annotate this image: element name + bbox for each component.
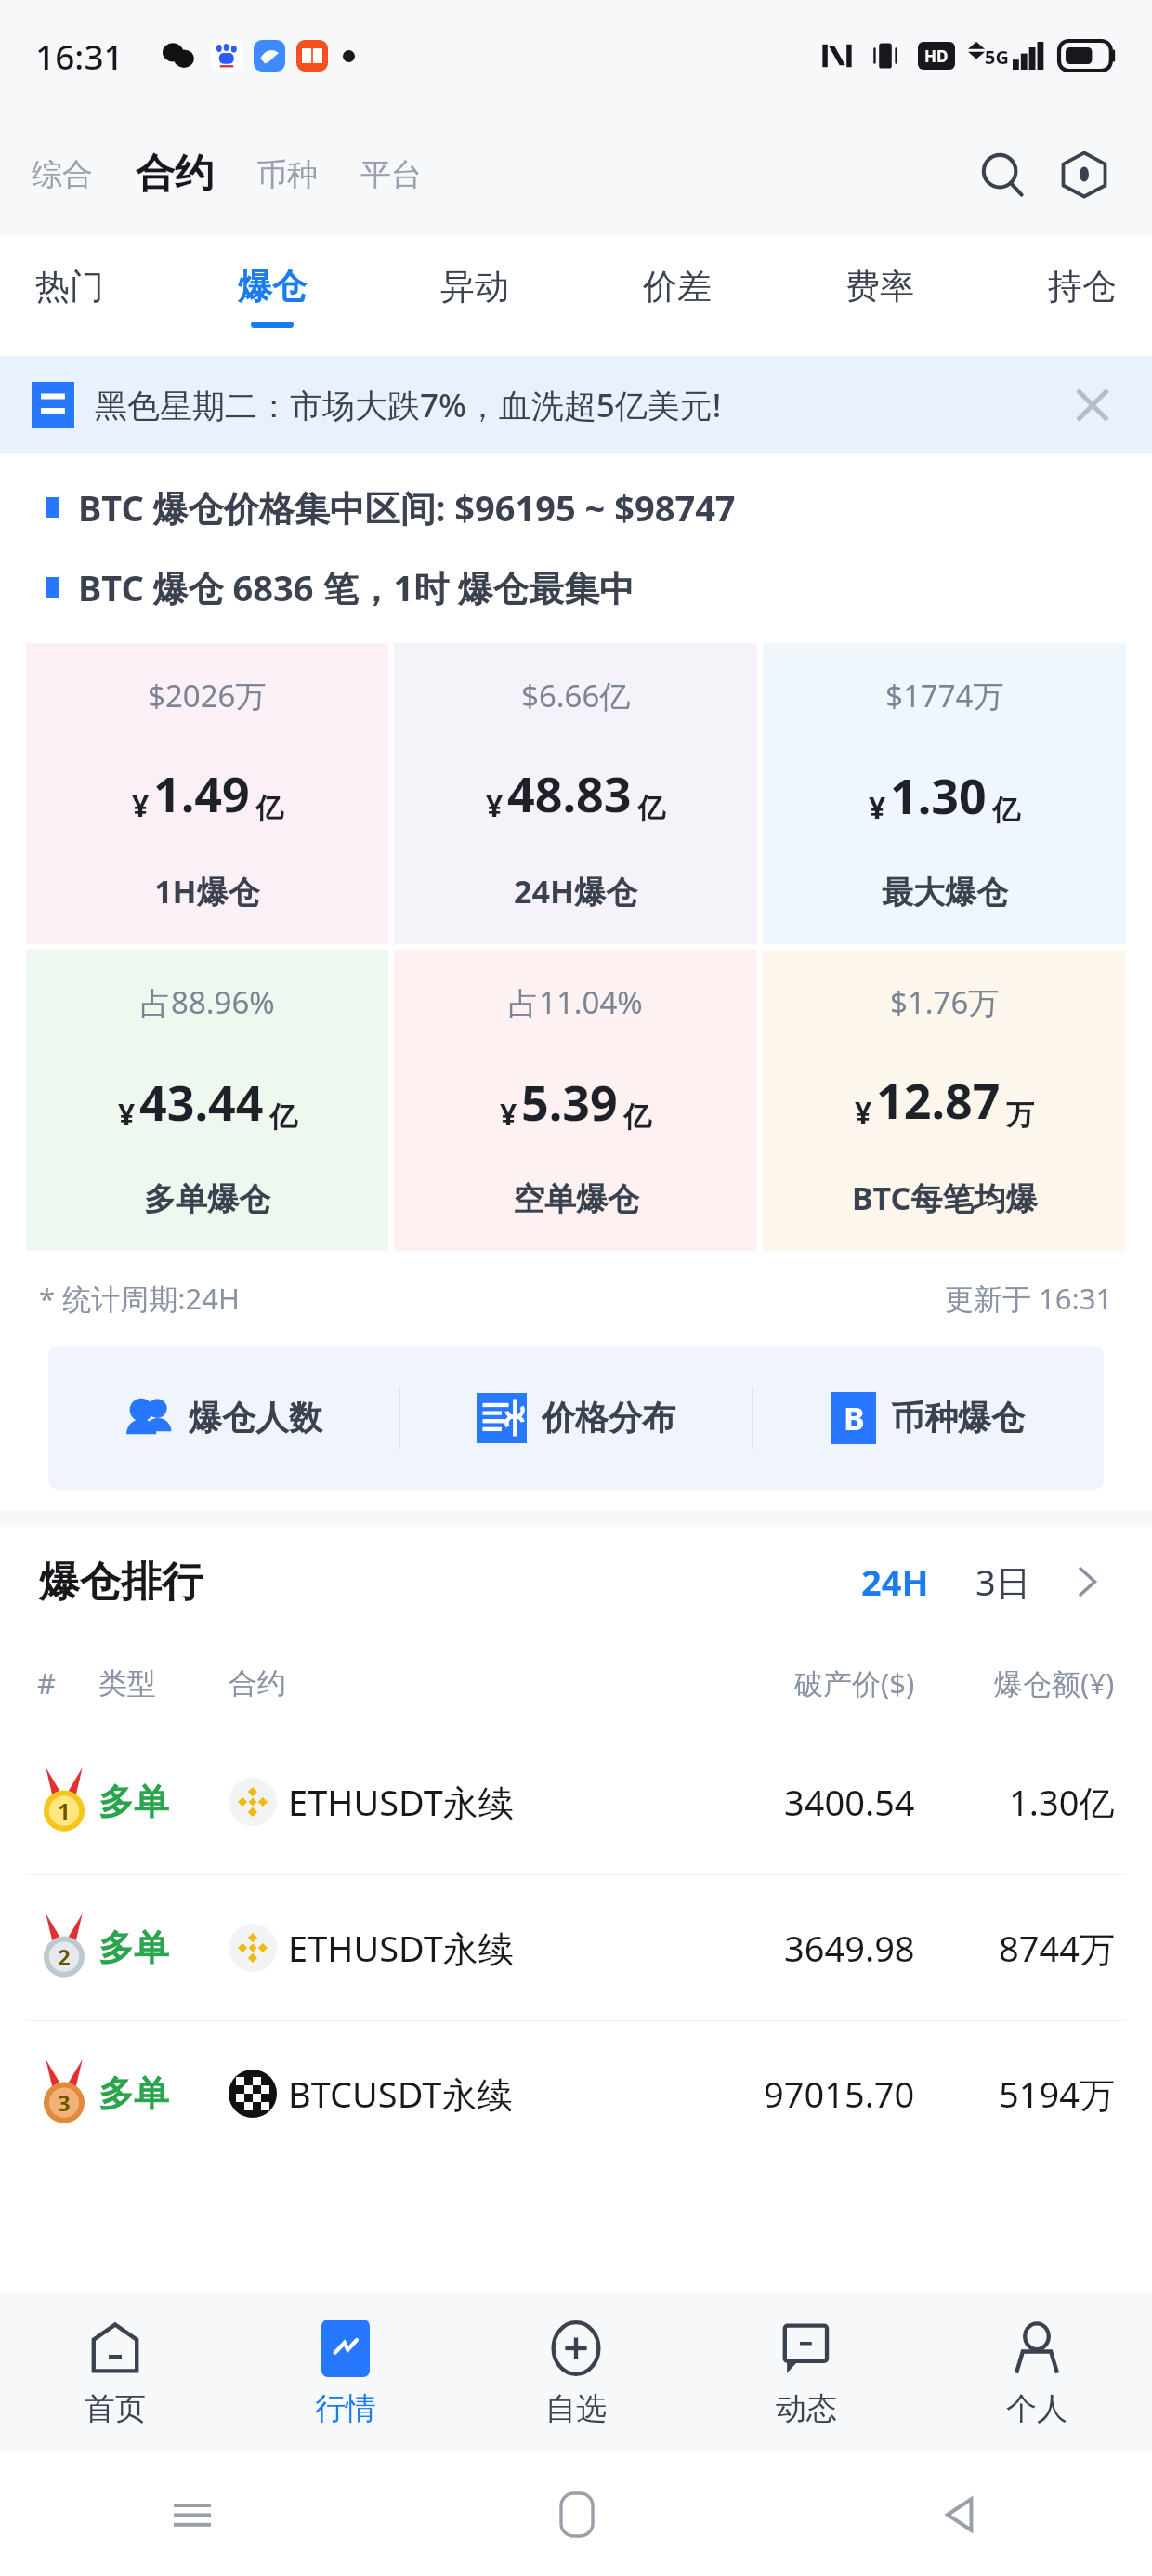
button[interactable]: $6.66亿 bbox=[394, 643, 757, 944]
button[interactable]: 合约 bbox=[136, 142, 214, 206]
staticText: 24H爆仓 bbox=[514, 870, 637, 913]
button[interactable]: Settings bbox=[1048, 138, 1120, 211]
staticText: 3400.54 bbox=[784, 1778, 915, 1826]
button[interactable]: 2 bbox=[0, 1875, 1152, 2020]
button[interactable]: 1 bbox=[0, 1729, 1152, 1874]
button[interactable]: $2026万 bbox=[26, 643, 388, 944]
staticText: 破产价($) bbox=[794, 1663, 915, 1702]
button[interactable]: 自选 bbox=[461, 2293, 691, 2453]
staticText: * 统计周期:24H bbox=[39, 1279, 240, 1318]
staticText: 多单 bbox=[98, 1780, 169, 1824]
staticText: ¥ bbox=[855, 1092, 872, 1133]
staticText: 97015.70 bbox=[764, 2070, 915, 2118]
staticText: B bbox=[844, 1397, 865, 1439]
button[interactable]: 综合 bbox=[32, 148, 93, 202]
button[interactable]: 占11.04% bbox=[394, 950, 757, 1251]
staticText: BTC 爆仓 6836 笔，1时 爆仓最集中 bbox=[78, 563, 635, 611]
button[interactable]: 爆仓人数 bbox=[48, 1346, 399, 1490]
staticText: 多单 bbox=[98, 1925, 169, 1970]
staticText: 3 bbox=[58, 2087, 71, 2118]
staticText: 空单爆仓 bbox=[513, 1179, 639, 1219]
staticText: 动态 bbox=[776, 2389, 837, 2428]
staticText: 多单爆仓 bbox=[144, 1179, 270, 1219]
staticText: 占88.96% bbox=[140, 981, 275, 1023]
staticText: 合约 bbox=[229, 1665, 286, 1702]
button[interactable]: 3 bbox=[0, 2021, 1152, 2166]
staticText: ¥ bbox=[486, 785, 504, 826]
staticText: 热门 bbox=[35, 265, 104, 309]
button[interactable]: 黑色星期二：市场大跌7%，血洗超5亿美元! bbox=[0, 356, 1152, 453]
staticText: 最大爆仓 bbox=[882, 873, 1008, 913]
staticText: ¥ bbox=[869, 787, 886, 828]
button[interactable]: 行情 bbox=[230, 2293, 461, 2453]
button[interactable]: 占88.96% bbox=[26, 950, 388, 1251]
button[interactable]: 3日 bbox=[966, 1550, 1041, 1613]
staticText: 48.83 bbox=[507, 760, 632, 826]
staticText: 综合 bbox=[32, 155, 93, 194]
button[interactable]: 首页 bbox=[0, 2293, 230, 2453]
staticText: 价差 bbox=[643, 265, 712, 309]
staticText: 爆仓额(¥) bbox=[994, 1663, 1115, 1702]
staticText: 5194万 bbox=[999, 2070, 1115, 2118]
staticText: $1.76万 bbox=[890, 981, 1000, 1023]
staticText: 3日 bbox=[975, 1557, 1031, 1606]
staticText: 43.44 bbox=[139, 1069, 264, 1135]
button[interactable]: 价差 bbox=[632, 259, 723, 334]
staticText: 1H爆仓 bbox=[154, 870, 260, 913]
staticText: 多单 bbox=[98, 2071, 169, 2116]
staticText: 3649.98 bbox=[784, 1924, 915, 1972]
button[interactable]: 平台 bbox=[360, 148, 422, 202]
button[interactable]: 爆仓 bbox=[227, 259, 318, 334]
staticText: 爆仓人数 bbox=[189, 1397, 322, 1439]
staticText: 1 bbox=[58, 1795, 71, 1826]
staticText: 持仓 bbox=[1048, 265, 1117, 309]
staticText: # bbox=[37, 1663, 57, 1702]
staticText: 平台 bbox=[360, 155, 422, 194]
staticText: 合约 bbox=[136, 150, 214, 199]
staticText: 费率 bbox=[845, 265, 914, 309]
staticText: 行情 bbox=[315, 2389, 376, 2428]
staticText: 亿 bbox=[269, 1099, 297, 1135]
button[interactable]: 异动 bbox=[429, 259, 520, 334]
staticText: 24H bbox=[861, 1557, 929, 1606]
staticText: 爆仓排行 bbox=[39, 1557, 203, 1608]
staticText: 亿 bbox=[623, 1099, 651, 1135]
staticText: 1.30 bbox=[890, 762, 987, 828]
button[interactable]: $1.76万 bbox=[763, 950, 1126, 1251]
staticText: 12.87 bbox=[876, 1067, 1001, 1133]
button[interactable]: 24H bbox=[852, 1550, 938, 1613]
staticText: BTC每笔均爆 bbox=[852, 1176, 1038, 1219]
button[interactable]: 热门 bbox=[24, 259, 115, 334]
button[interactable]: Search bbox=[966, 138, 1039, 211]
staticText: 类型 bbox=[98, 1665, 156, 1702]
staticText: ¥ bbox=[118, 1094, 136, 1135]
staticText: 首页 bbox=[85, 2389, 146, 2428]
staticText: BTC 爆仓价格集中区间: $96195 ~ $98747 bbox=[78, 483, 736, 532]
button[interactable]: 费率 bbox=[834, 259, 925, 334]
staticText: 8744万 bbox=[999, 1924, 1115, 1972]
staticText: 爆仓 bbox=[238, 265, 307, 309]
button[interactable]: More bbox=[1061, 1556, 1113, 1608]
button[interactable]: 价格分布 bbox=[400, 1346, 752, 1490]
staticText: ETHUSDT永续 bbox=[288, 1924, 514, 1972]
staticText: 更新于 16:31 bbox=[945, 1279, 1113, 1318]
button[interactable]: $1774万 bbox=[763, 643, 1126, 944]
staticText: 亿 bbox=[255, 791, 283, 826]
button[interactable]: 持仓 bbox=[1037, 259, 1128, 334]
staticText: 个人 bbox=[1006, 2389, 1067, 2428]
staticText: $1774万 bbox=[885, 675, 1004, 716]
staticText: 1.49 bbox=[153, 760, 250, 826]
staticText: BTCUSDT永续 bbox=[288, 2070, 513, 2118]
button[interactable]: 个人 bbox=[922, 2293, 1152, 2453]
staticText: 自选 bbox=[545, 2389, 607, 2428]
button[interactable]: 币种 bbox=[256, 148, 318, 202]
staticText: $2026万 bbox=[148, 675, 267, 716]
staticText: 黑色星期二：市场大跌7%，血洗超5亿美元! bbox=[95, 383, 722, 427]
staticText: 币种爆仓 bbox=[891, 1397, 1025, 1439]
button[interactable]: 动态 bbox=[691, 2293, 922, 2453]
staticText: 5G bbox=[985, 45, 1009, 70]
staticText: 亿 bbox=[637, 791, 665, 826]
staticText: 异动 bbox=[440, 265, 509, 309]
button[interactable]: B bbox=[753, 1346, 1104, 1490]
button[interactable]: Close bbox=[1065, 377, 1120, 433]
